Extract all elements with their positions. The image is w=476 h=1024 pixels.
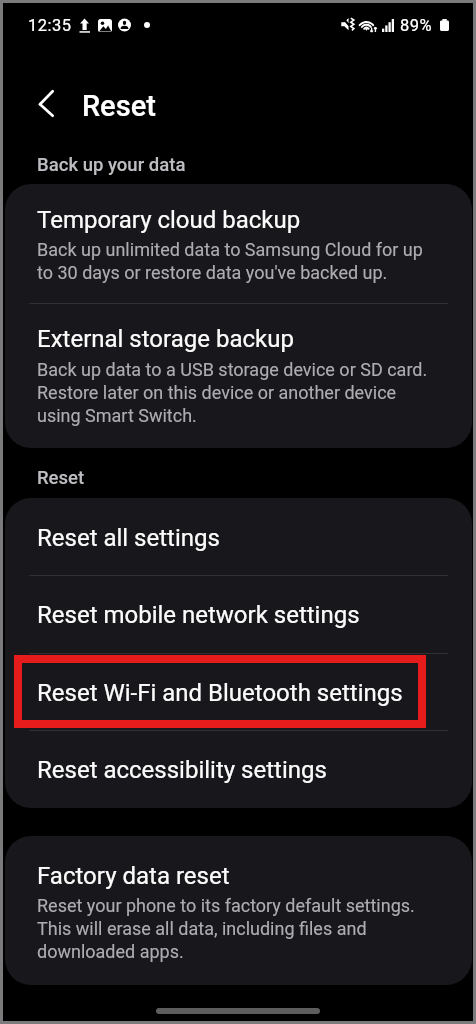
staticText: 12:35 xyxy=(28,16,72,35)
staticText: Reset your phone to its factory default … xyxy=(37,895,415,916)
staticText: Reset all settings xyxy=(37,524,220,552)
staticText: Back up unlimited data to Samsung Cloud … xyxy=(37,239,423,260)
staticText: 89% xyxy=(400,16,433,35)
staticText: downloaded apps. xyxy=(37,941,184,962)
staticText: Back up your data xyxy=(37,154,186,176)
staticText: Reset xyxy=(82,89,156,123)
staticText: Factory data reset xyxy=(37,862,230,890)
staticText: External storage backup xyxy=(37,325,294,353)
staticText: using Smart Switch. xyxy=(37,405,197,426)
staticText: Reset mobile network settings xyxy=(37,601,360,629)
button[interactable] xyxy=(5,836,472,985)
staticText: Reset Wi-Fi and Bluetooth settings xyxy=(37,679,403,707)
button[interactable]: Reset all settings xyxy=(5,498,472,575)
button[interactable]: Navigate up xyxy=(26,83,70,127)
staticText: Reset xyxy=(37,467,85,489)
staticText: Back up data to a USB storage device or … xyxy=(37,359,428,380)
staticText: Reset accessibility settings xyxy=(37,756,327,784)
button[interactable] xyxy=(5,184,472,303)
staticText: This will erase all data, including file… xyxy=(37,918,367,939)
staticText: to 30 days or restore data you've backed… xyxy=(37,262,388,283)
button[interactable]: Reset accessibility settings xyxy=(5,730,472,808)
button[interactable]: Reset Wi-Fi and Bluetooth settings xyxy=(5,653,472,730)
button[interactable]: Reset mobile network settings xyxy=(5,575,472,653)
staticText: Temporary cloud backup xyxy=(37,206,301,234)
button[interactable] xyxy=(5,304,472,448)
staticText: Restore later on this device or another … xyxy=(37,382,397,403)
